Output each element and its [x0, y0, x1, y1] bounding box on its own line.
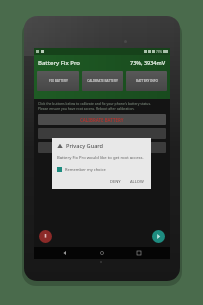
staticText: 73%, 3934mV [130, 59, 166, 66]
button[interactable]: Home [96, 247, 108, 259]
staticText: Battery Fix Pro [38, 59, 81, 67]
button[interactable]: CALIBRATE BATTERY [38, 114, 166, 125]
staticText: Battery Fix Pro would like to get root a… [57, 155, 144, 161]
staticText: CALIBRATE BATTERY [87, 79, 118, 83]
button[interactable]: CALIBRATE BATTERY [82, 71, 123, 91]
staticText: Remember my choice [65, 167, 106, 172]
button[interactable]: Recent apps [133, 247, 145, 259]
button[interactable] [38, 128, 166, 139]
staticText: ALLOW [130, 179, 144, 184]
button[interactable]: BATTERY INFO [126, 71, 167, 91]
button[interactable]: Start [152, 230, 165, 243]
button[interactable]: FIX BATTERY [37, 71, 79, 91]
button[interactable]: Remember my choice [57, 167, 106, 172]
button[interactable]: ALLOW [128, 178, 146, 185]
button[interactable]: Back [59, 247, 71, 259]
staticText: Privacy Guard [66, 142, 104, 150]
staticText: Click the buttons below to calibrate and… [38, 101, 151, 111]
button[interactable] [38, 142, 166, 153]
staticText: FIX BATTERY [49, 79, 68, 83]
staticText: CALIBRATE BATTERY [80, 117, 124, 123]
staticText: DENY [110, 179, 121, 184]
button[interactable]: DENY [108, 178, 123, 185]
staticText: 73% [156, 50, 162, 54]
button[interactable]: Stop [39, 230, 52, 243]
staticText: BATTERY INFO [136, 79, 158, 83]
